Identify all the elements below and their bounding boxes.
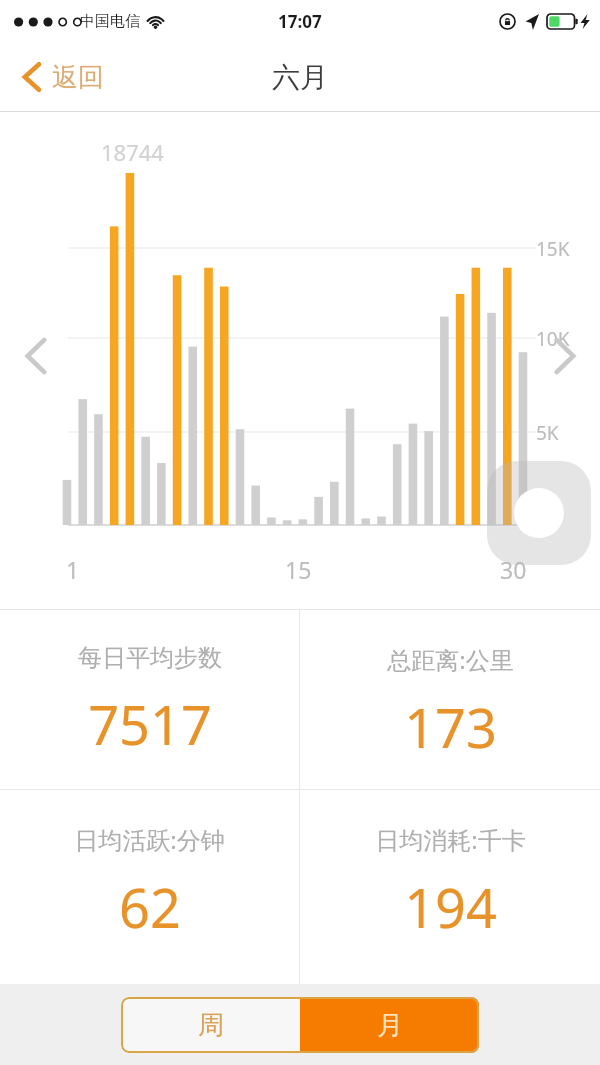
staticText: 18744 bbox=[101, 137, 164, 167]
button[interactable]: 总距离:公里 bbox=[300, 610, 600, 789]
staticText: 月 bbox=[377, 1009, 403, 1042]
staticText: 173 bbox=[404, 690, 497, 764]
staticText: 30 bbox=[500, 554, 527, 585]
button[interactable]: Next month bbox=[540, 325, 592, 387]
staticText: 15K bbox=[536, 236, 570, 262]
button[interactable]: 每日平均步数 bbox=[0, 610, 299, 789]
staticText: 15 bbox=[285, 554, 312, 585]
staticText: 日均消耗:千卡 bbox=[375, 823, 526, 856]
staticText: 总距离:公里 bbox=[387, 643, 514, 676]
staticText: 10K bbox=[536, 326, 570, 352]
staticText: 返回 bbox=[52, 61, 104, 94]
staticText: 194 bbox=[404, 870, 497, 944]
staticText: 7517 bbox=[88, 687, 212, 761]
button[interactable]: 日均活跃:分钟 bbox=[0, 790, 299, 984]
staticText: 每日平均步数 bbox=[78, 643, 222, 673]
staticText: 17:07 bbox=[278, 10, 322, 33]
staticText: 周 bbox=[198, 1009, 224, 1042]
staticText: 中国电信 bbox=[80, 12, 140, 31]
staticText: 六月 bbox=[272, 60, 328, 95]
button[interactable]: AssistiveTouch bbox=[487, 461, 591, 565]
staticText: 1 bbox=[66, 554, 80, 585]
button[interactable]: 月 bbox=[300, 997, 479, 1053]
staticText: 5K bbox=[536, 420, 559, 446]
staticText: 62 bbox=[119, 870, 181, 944]
staticText: 日均活跃:分钟 bbox=[74, 823, 225, 856]
button[interactable]: 周 bbox=[121, 997, 300, 1053]
button[interactable]: 日均消耗:千卡 bbox=[300, 790, 600, 984]
button[interactable]: Previous month bbox=[12, 325, 64, 387]
button[interactable]: 返回 bbox=[0, 42, 120, 112]
